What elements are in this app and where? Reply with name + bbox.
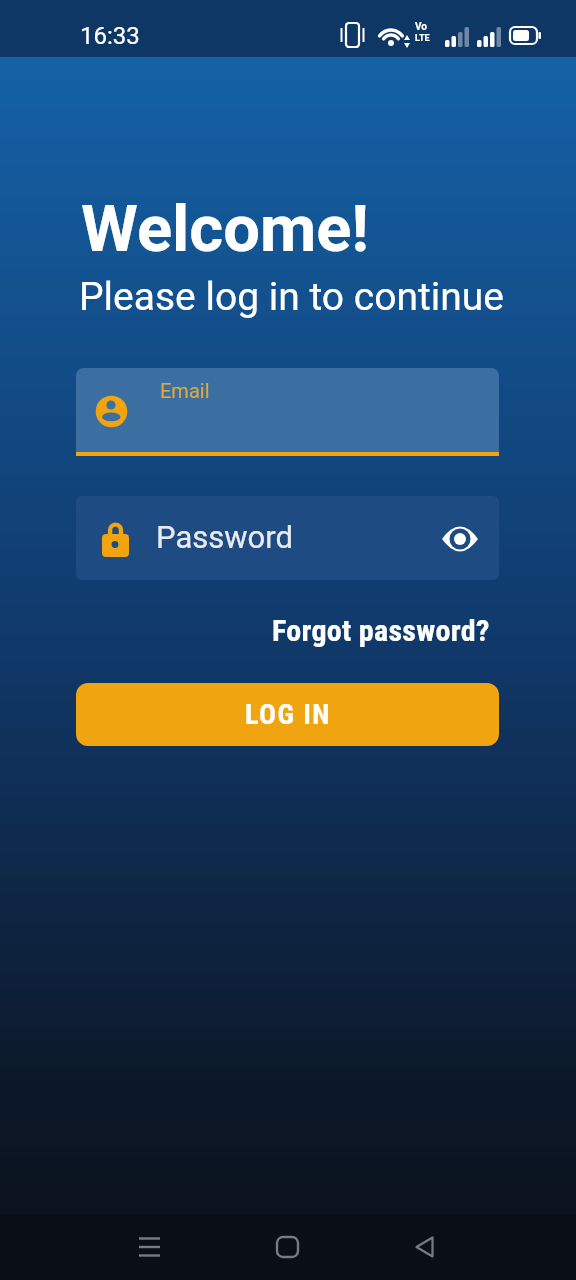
staticText: Password <box>156 519 293 555</box>
staticText: 16:33 <box>80 22 140 50</box>
staticText: Email <box>160 379 210 402</box>
button[interactable] <box>128 1225 172 1269</box>
button[interactable] <box>265 1225 309 1269</box>
button[interactable]: LOG IN <box>76 683 499 746</box>
staticText: Welcome! <box>81 191 370 267</box>
button[interactable]: Password <box>76 496 499 580</box>
staticText: Please log in to continue <box>79 274 504 320</box>
button[interactable] <box>402 1225 446 1269</box>
staticText: LTE <box>415 33 430 44</box>
staticText: LOG IN <box>245 698 331 731</box>
button[interactable]: Forgot password? <box>272 613 490 648</box>
button[interactable]: Email <box>76 368 499 456</box>
staticText: Vo <box>415 21 427 33</box>
